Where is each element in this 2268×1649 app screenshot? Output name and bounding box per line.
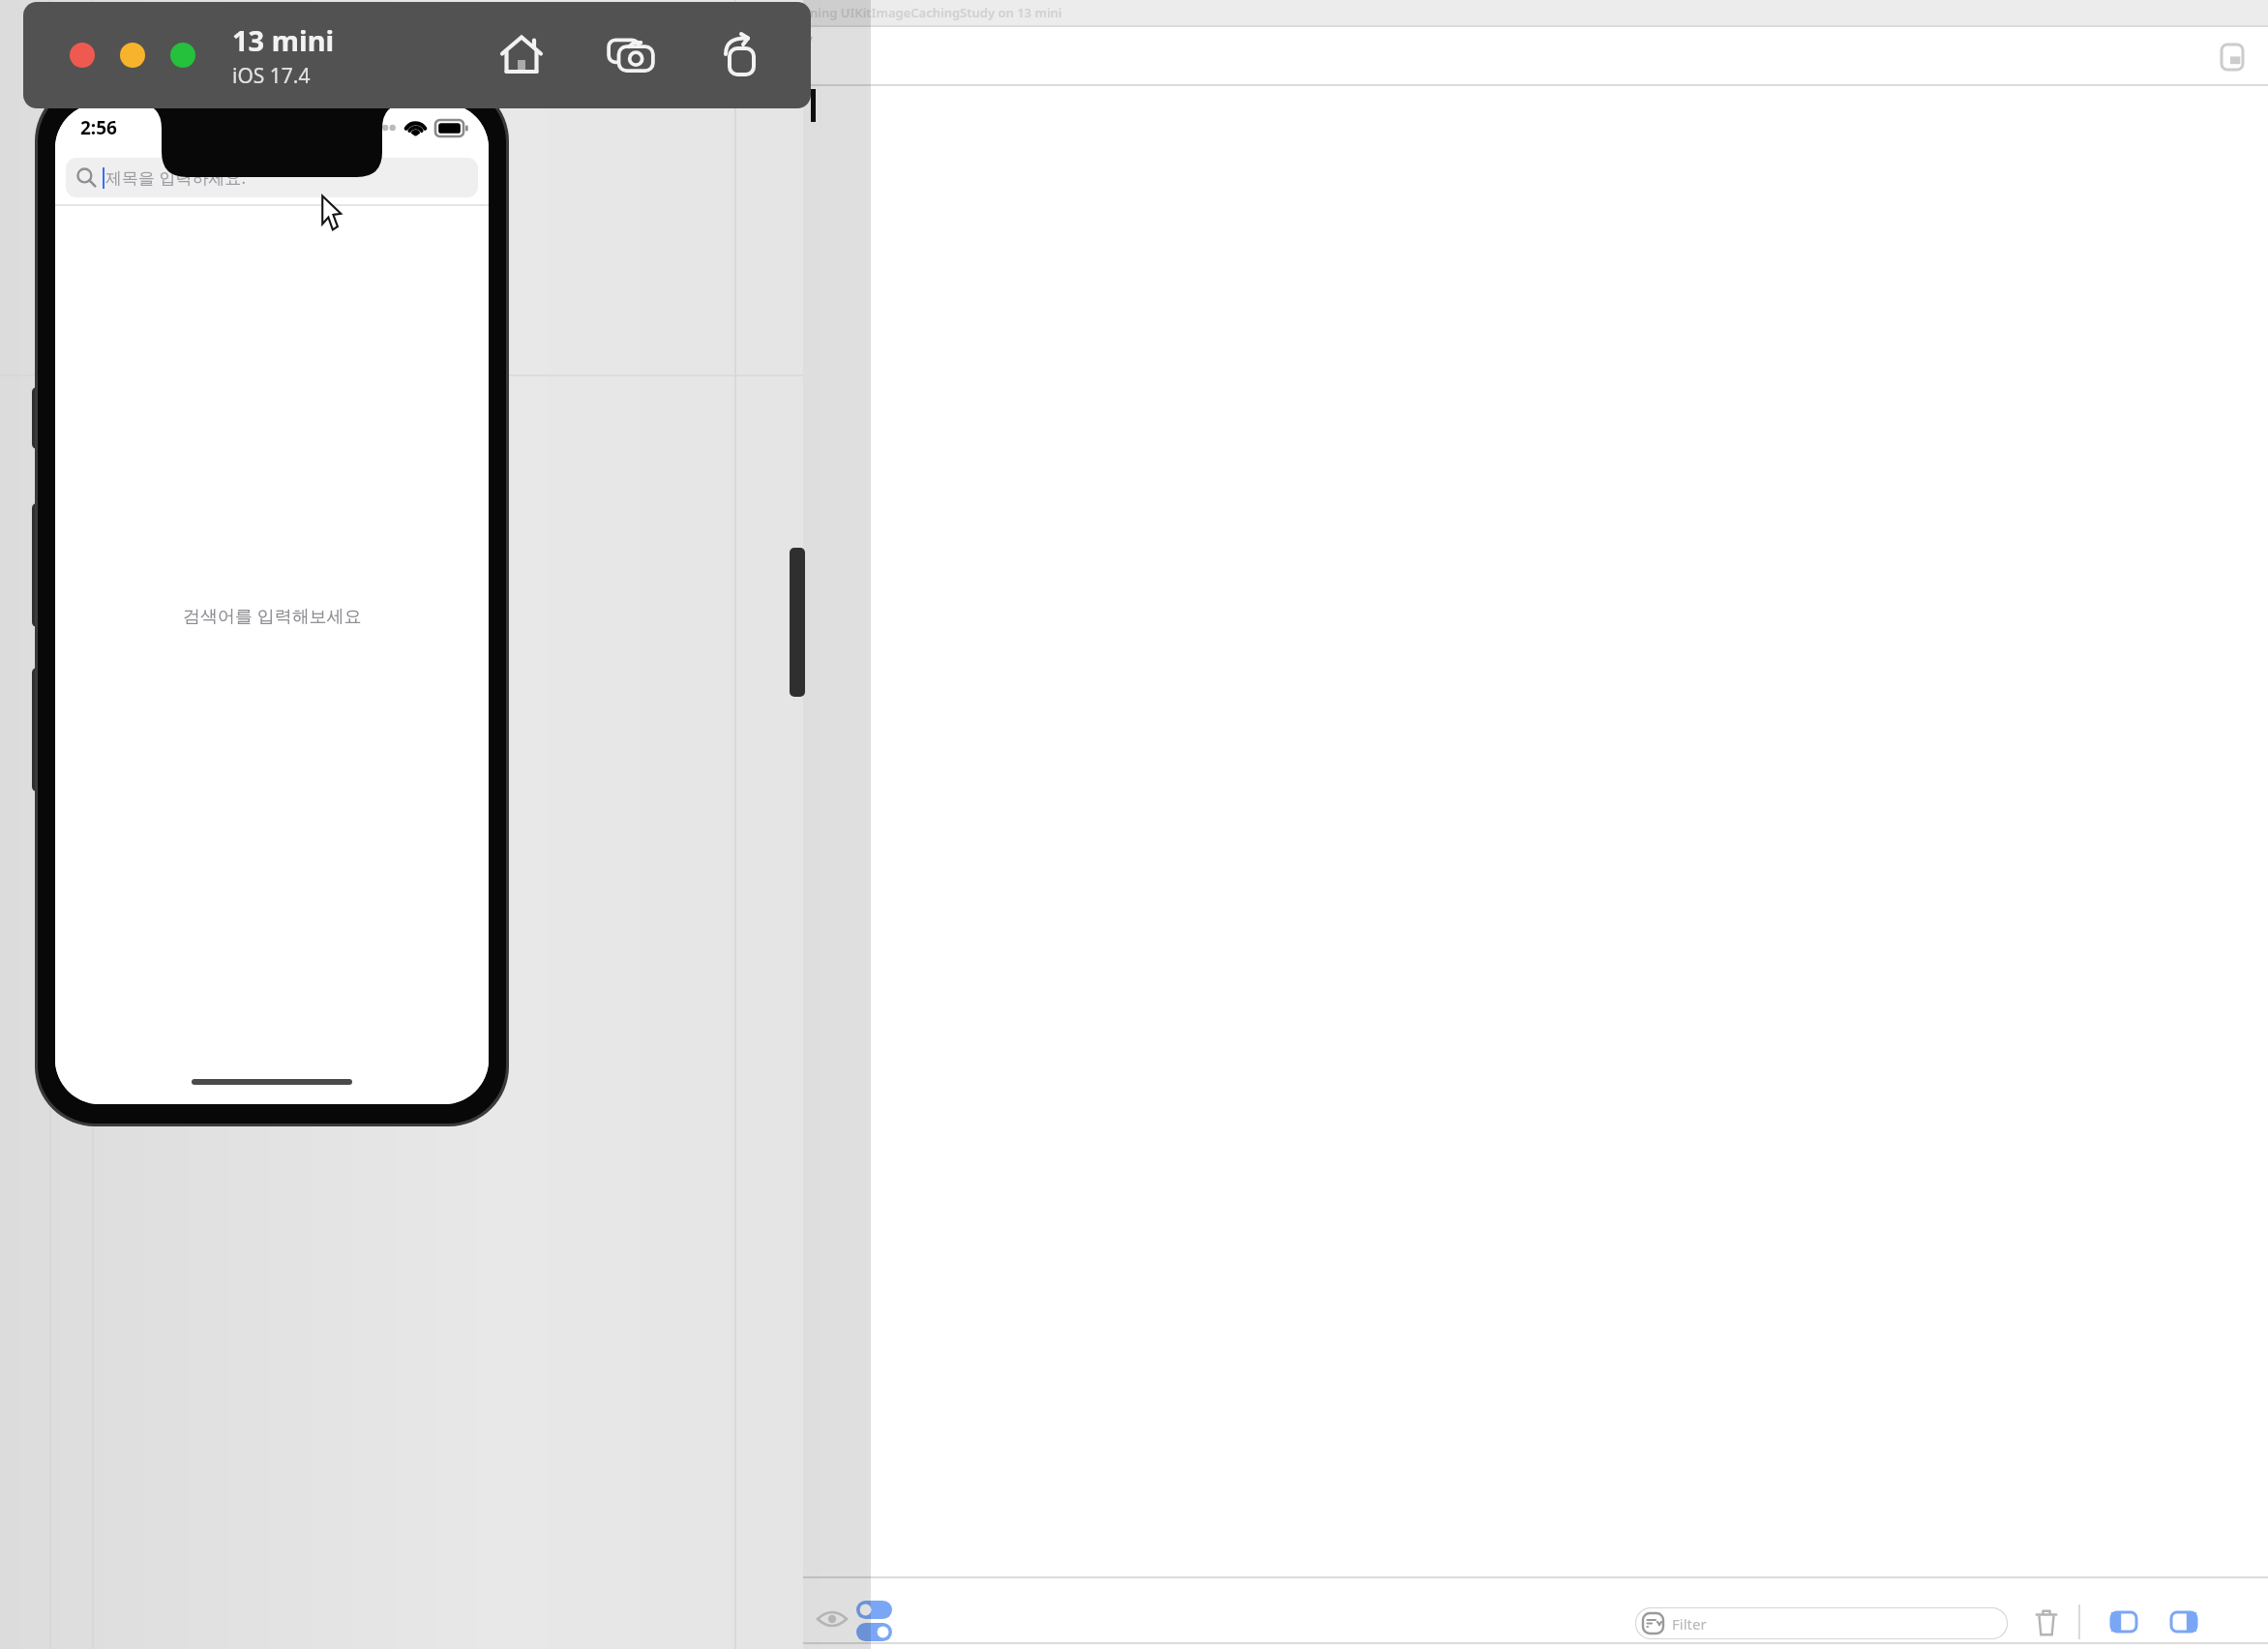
button[interactable]: Preview visibility — [816, 1605, 849, 1633]
button[interactable]: Zoom — [170, 43, 195, 68]
staticText: Running UIKitImageCachingStudy on 13 min… — [786, 4, 1062, 21]
button[interactable]: Close — [70, 43, 95, 68]
button[interactable]: Filter — [1635, 1607, 2008, 1639]
staticText: 13 mini — [232, 21, 335, 59]
staticText: 제목을 입력하세요. — [105, 166, 246, 189]
button[interactable]: Toggle — [856, 1601, 892, 1619]
button[interactable]: Toggle — [856, 1623, 892, 1641]
button[interactable]: Minimize — [120, 43, 145, 68]
staticText: 검색어를 입력해보세요 — [183, 604, 362, 628]
staticText: Filter — [1672, 1614, 1707, 1634]
button[interactable]: Screenshot — [606, 30, 656, 80]
staticText: iOS 17.4 — [232, 62, 311, 90]
button[interactable]: Home — [497, 31, 546, 79]
button[interactable]: Rotate — [716, 31, 764, 79]
staticText: tudy — [782, 29, 813, 48]
button[interactable]: Toggle navigator — [2107, 1605, 2140, 1638]
button[interactable]: 제목을 입력하세요. — [66, 158, 478, 197]
button[interactable]: Clear console — [2032, 1606, 2061, 1639]
staticText: 2:56 — [80, 115, 117, 140]
button[interactable]: Toggle inspector — [2167, 1605, 2200, 1638]
